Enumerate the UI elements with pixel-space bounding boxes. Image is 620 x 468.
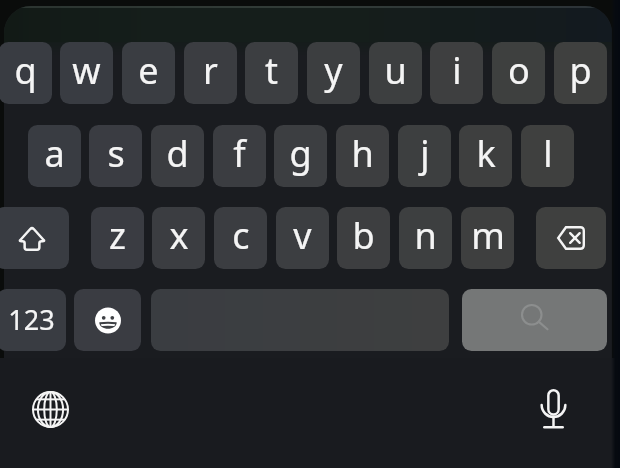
button[interactable]: h [336, 125, 389, 187]
staticText: p [569, 46, 592, 95]
button[interactable]: r [184, 42, 237, 104]
button[interactable]: 123 [0, 289, 66, 351]
button[interactable]: Search [462, 289, 607, 351]
button[interactable]: n [399, 207, 452, 269]
staticText: e [138, 46, 159, 95]
staticText: 123 [8, 301, 55, 338]
button[interactable]: e [122, 42, 175, 104]
staticText: s [107, 129, 125, 178]
button[interactable]: Shift [0, 207, 69, 269]
staticText: t [265, 46, 278, 95]
button[interactable]: Voice input [527, 383, 579, 435]
button[interactable]: o [492, 42, 545, 104]
button[interactable]: d [151, 125, 204, 187]
staticText: v [293, 211, 312, 260]
button[interactable]: c [214, 207, 267, 269]
staticText: u [384, 46, 407, 95]
button[interactable]: t [245, 42, 298, 104]
button[interactable]: i [430, 42, 483, 104]
staticText: x [169, 211, 189, 260]
button[interactable]: v [276, 207, 329, 269]
staticText: z [109, 211, 126, 260]
button[interactable]: q [0, 42, 52, 104]
button[interactable]: f [213, 125, 266, 187]
staticText: o [508, 46, 530, 95]
button[interactable]: s [89, 125, 142, 187]
staticText: n [414, 211, 437, 260]
staticText: c [232, 211, 250, 260]
staticText: r [203, 46, 218, 95]
staticText: l [543, 129, 553, 178]
button[interactable]: y [307, 42, 360, 104]
button[interactable]: m [461, 207, 514, 269]
button[interactable]: u [369, 42, 422, 104]
button[interactable]: j [398, 125, 451, 187]
staticText: i [452, 46, 462, 95]
button[interactable]: z [91, 207, 144, 269]
button[interactable]: g [274, 125, 327, 187]
staticText: y [324, 46, 343, 95]
staticText: m [471, 211, 505, 260]
staticText: a [44, 129, 65, 178]
button[interactable]: k [459, 125, 512, 187]
staticText: w [72, 46, 101, 95]
staticText: d [166, 129, 189, 178]
button[interactable]: p [554, 42, 607, 104]
button[interactable]: x [152, 207, 205, 269]
staticText: j [420, 129, 430, 178]
button[interactable]: a [28, 125, 81, 187]
staticText: h [351, 129, 374, 178]
button[interactable]: Emoji [74, 289, 141, 351]
button[interactable]: l [521, 125, 574, 187]
staticText: g [289, 129, 312, 178]
staticText: q [14, 46, 37, 95]
button[interactable]: Delete [536, 207, 606, 269]
button[interactable]: w [60, 42, 113, 104]
staticText: b [352, 211, 375, 260]
button[interactable]: Change keyboard language [24, 383, 76, 435]
staticText: k [476, 129, 496, 178]
button[interactable]: b [337, 207, 390, 269]
staticText: f [233, 129, 246, 178]
